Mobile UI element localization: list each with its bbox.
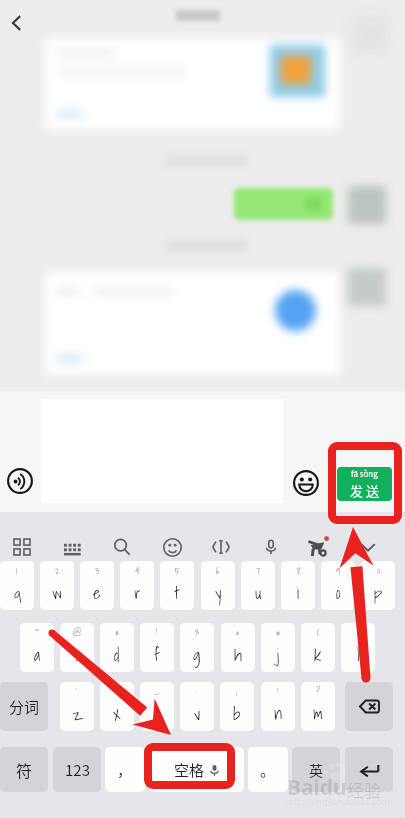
staticText: n xyxy=(274,700,283,727)
button[interactable]: 6 xyxy=(201,561,235,610)
staticText: ; xyxy=(236,684,238,698)
button[interactable]: ? xyxy=(301,682,335,731)
staticText: g xyxy=(193,641,201,668)
button[interactable]: 。 xyxy=(248,747,288,792)
staticText: d xyxy=(114,641,120,668)
staticText: c xyxy=(154,700,161,727)
staticText: & xyxy=(236,625,240,639)
button[interactable]: 英 xyxy=(292,747,340,792)
staticText: ， xyxy=(117,759,133,781)
staticText: 发 送 xyxy=(350,481,379,500)
button[interactable]: 2 xyxy=(40,561,74,610)
button[interactable]: @ xyxy=(60,623,94,672)
staticText: ! xyxy=(156,625,158,639)
staticText: ' xyxy=(277,684,279,698)
staticText: 符 xyxy=(16,758,33,781)
staticText: 。 xyxy=(260,759,276,781)
button[interactable]: ; xyxy=(220,682,254,731)
button[interactable]: ) xyxy=(341,623,375,672)
staticText: k xyxy=(314,641,322,668)
staticText: h xyxy=(234,641,242,668)
button[interactable]: ( xyxy=(301,623,335,672)
button[interactable]: Emoji xyxy=(151,525,193,569)
button[interactable]: 空格 xyxy=(149,747,244,792)
staticText: # xyxy=(115,625,120,639)
button[interactable]: 5 xyxy=(160,561,194,610)
staticText: o xyxy=(336,579,341,606)
staticText: % xyxy=(195,625,200,639)
staticText: z xyxy=(72,700,83,727)
button[interactable]: * xyxy=(261,623,295,672)
staticText: b xyxy=(233,700,241,727)
staticText: u xyxy=(255,579,262,606)
staticText: v xyxy=(194,700,201,727)
button[interactable]: 符 xyxy=(0,747,48,792)
staticText: l xyxy=(357,641,360,668)
button[interactable]: - xyxy=(100,682,134,731)
staticText: fā sòng xyxy=(351,468,378,480)
button[interactable]: Voice input xyxy=(2,463,38,499)
staticText: w xyxy=(52,579,62,606)
staticText: p xyxy=(374,579,383,606)
staticText: 分词 xyxy=(9,696,40,718)
button[interactable]: 8 xyxy=(281,561,315,610)
button[interactable]: ， xyxy=(105,747,145,792)
staticText: y xyxy=(215,579,222,606)
button[interactable]: Search xyxy=(101,525,143,569)
staticText: i xyxy=(297,579,300,606)
button[interactable]: ~ xyxy=(20,623,54,672)
staticText: a xyxy=(34,641,41,668)
staticText: _ xyxy=(154,684,160,698)
button[interactable]: ` xyxy=(60,682,94,731)
button[interactable]: 1 xyxy=(0,561,34,610)
button[interactable]: Grid xyxy=(1,525,43,569)
staticText: m xyxy=(313,700,323,727)
staticText: 6 xyxy=(216,563,220,577)
staticText: ) xyxy=(357,625,360,639)
button[interactable]: Back xyxy=(0,5,36,41)
staticText: r xyxy=(134,579,141,606)
button[interactable]: Shop xyxy=(297,525,339,569)
button[interactable]: Translate xyxy=(200,525,242,569)
button[interactable]: fā sòng xyxy=(337,467,392,501)
button[interactable]: Voice xyxy=(250,525,292,569)
staticText: 2 xyxy=(55,563,60,577)
staticText: 英 xyxy=(309,760,323,780)
button[interactable]: : xyxy=(180,682,214,731)
button[interactable]: 0 xyxy=(361,561,395,610)
staticText: 1 xyxy=(16,563,18,577)
button[interactable]: Keyboard xyxy=(51,525,93,569)
button[interactable]: # xyxy=(100,623,134,672)
staticText: q xyxy=(14,579,21,606)
staticText: e xyxy=(93,579,101,606)
button[interactable]: ' xyxy=(261,682,295,731)
button[interactable]: 123 xyxy=(53,747,101,792)
button[interactable] xyxy=(345,682,393,731)
button[interactable] xyxy=(345,747,393,792)
button[interactable]: Emoji xyxy=(288,465,324,501)
staticText: t xyxy=(175,579,180,606)
button[interactable]: 分词 xyxy=(0,682,48,731)
button[interactable]: & xyxy=(221,623,255,672)
staticText: http://jingyan.baidu.com xyxy=(285,795,390,807)
staticText: : xyxy=(196,684,198,698)
staticText: ~ xyxy=(35,625,40,639)
button[interactable]: 7 xyxy=(241,561,275,610)
staticText: 7 xyxy=(256,563,261,577)
staticText: ( xyxy=(317,625,320,639)
button[interactable]: 9 xyxy=(321,561,355,610)
button[interactable]: ! xyxy=(140,623,174,672)
staticText: - xyxy=(115,684,119,698)
button[interactable]: 4 xyxy=(120,561,154,610)
staticText: 8 xyxy=(297,563,300,577)
staticText: @ xyxy=(73,625,82,639)
staticText: 3 xyxy=(95,563,100,577)
staticText: x xyxy=(113,700,121,727)
button[interactable]: Collapse xyxy=(347,525,389,569)
staticText: Baidu xyxy=(287,773,347,802)
button[interactable]: 3 xyxy=(80,561,114,610)
button[interactable]: _ xyxy=(140,682,174,731)
button[interactable]: % xyxy=(180,623,214,672)
staticText: f xyxy=(154,641,160,668)
